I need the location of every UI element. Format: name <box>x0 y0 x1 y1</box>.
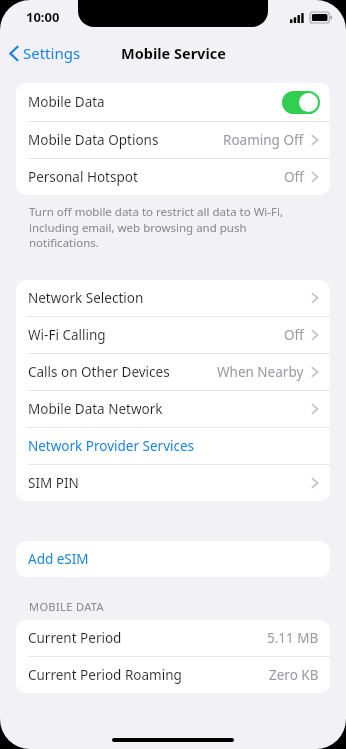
staticText: MOBILE DATA <box>29 599 346 614</box>
staticText: Network Selection <box>28 289 144 307</box>
button[interactable]: Calls on Other Devices <box>16 354 330 390</box>
button[interactable]: Current Period Roaming <box>16 657 330 693</box>
staticText: Zero KB <box>269 666 319 684</box>
button[interactable]: Network Selection <box>16 280 330 316</box>
staticText: Current Period Roaming <box>28 666 182 684</box>
button[interactable]: Personal Hotspot <box>16 159 330 195</box>
button[interactable]: Mobile Data <box>16 83 330 121</box>
staticText: 5.11 MB <box>267 629 319 647</box>
staticText: Roaming Off <box>223 131 304 149</box>
staticText: Mobile Data Network <box>28 400 163 418</box>
staticText: Personal Hotspot <box>28 168 138 186</box>
staticText: SIM PIN <box>28 474 79 492</box>
staticText: Calls on Other Devices <box>28 363 170 381</box>
button[interactable]: Settings <box>0 39 89 67</box>
button[interactable]: Mobile Data Network <box>16 391 330 427</box>
staticText: Wi-Fi Calling <box>28 326 106 344</box>
staticText: When Nearby <box>217 363 304 381</box>
button[interactable]: Current Period <box>16 620 330 656</box>
staticText: Turn off mobile data to restrict all dat… <box>29 204 312 250</box>
button[interactable]: SIM PIN <box>16 465 330 501</box>
staticText: Settings <box>23 43 81 63</box>
button[interactable]: Mobile Data toggle <box>282 91 320 114</box>
staticText: Off <box>284 168 304 186</box>
staticText: Off <box>284 326 304 344</box>
button[interactable]: Mobile Data Options <box>16 122 330 158</box>
button[interactable]: Wi-Fi Calling <box>16 317 330 353</box>
staticText: Mobile Data Options <box>28 131 159 149</box>
staticText: Add eSIM <box>28 550 89 568</box>
button[interactable]: Network Provider Services <box>16 428 330 464</box>
staticText: Current Period <box>28 629 122 647</box>
staticText: Mobile Data <box>28 93 105 111</box>
staticText: Network Provider Services <box>28 437 195 455</box>
staticText: Mobile Service <box>121 43 226 63</box>
button[interactable]: Add eSIM <box>16 541 330 577</box>
staticText: 10:00 <box>26 8 60 26</box>
